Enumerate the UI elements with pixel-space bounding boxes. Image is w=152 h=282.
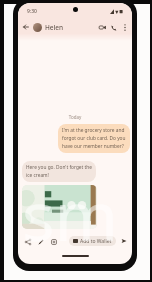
button[interactable]: Share <box>22 236 33 247</box>
button[interactable]: More options <box>119 22 130 33</box>
button[interactable]: Send <box>119 236 129 246</box>
staticText: Add to Wallet <box>80 238 112 245</box>
staticText: Here you go. Don't forget the ice cream! <box>26 164 92 179</box>
button[interactable]: Back <box>21 22 31 32</box>
button[interactable]: I'm at the grocery store and forgot our … <box>58 124 130 153</box>
staticText: sm <box>22 168 132 261</box>
staticText: Helen <box>45 23 64 32</box>
staticText: Today <box>18 114 132 120</box>
staticText: I'm at the grocery store and forgot our … <box>62 127 126 150</box>
button[interactable]: Video call <box>97 22 108 33</box>
button[interactable]: Lens <box>48 236 59 247</box>
button[interactable]: Loyalty card photo <box>22 185 97 229</box>
button[interactable]: Edit <box>35 236 46 247</box>
button[interactable]: Contact photo <box>33 23 42 32</box>
button[interactable]: Add to Wallet <box>69 236 116 246</box>
button[interactable]: Call <box>108 22 119 33</box>
button[interactable]: Here you go. Don't forget the ice cream! <box>22 161 96 182</box>
staticText: 9:30 <box>27 8 37 15</box>
